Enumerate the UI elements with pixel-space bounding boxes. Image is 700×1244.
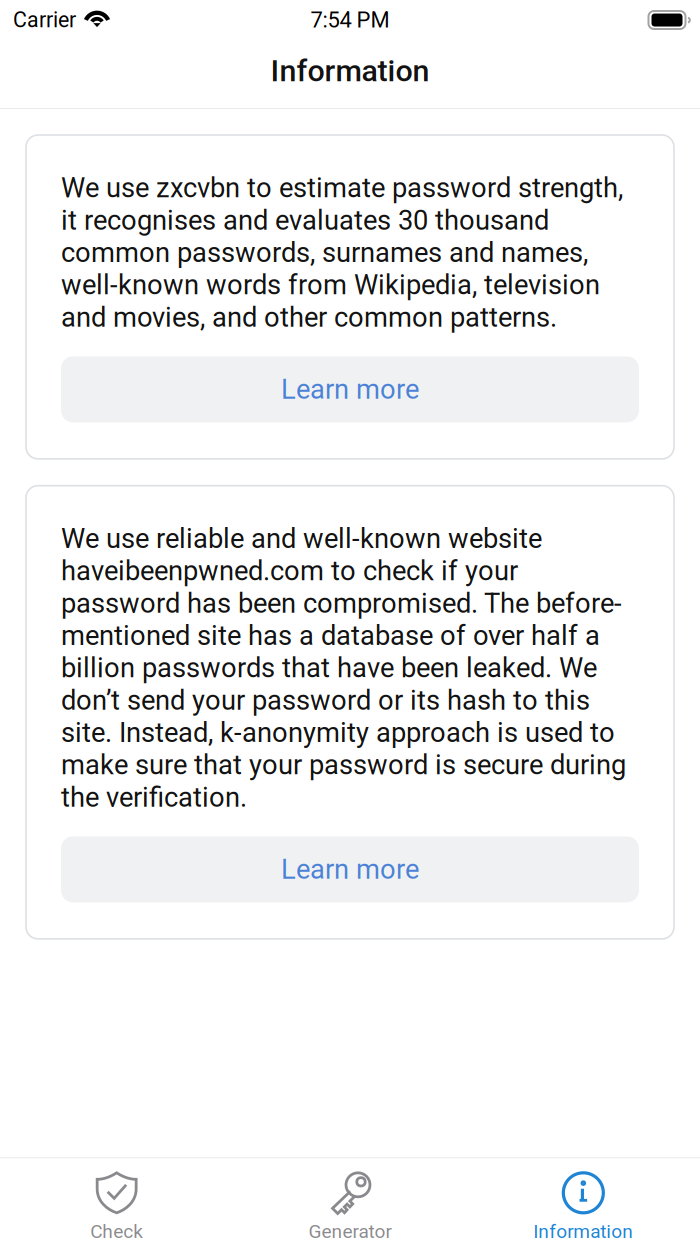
staticText: Carrier [13, 7, 76, 32]
staticText: Information [533, 1220, 633, 1243]
button[interactable]: Learn more [61, 356, 639, 422]
button[interactable]: Information [467, 1158, 700, 1244]
staticText: Learn more [281, 373, 419, 405]
button[interactable]: Learn more [61, 836, 639, 902]
staticText: Information [270, 53, 429, 89]
staticText: Generator [308, 1220, 391, 1243]
staticText: Learn more [281, 853, 419, 885]
staticText: We use zxcvbn to estimate password stren… [61, 172, 623, 333]
button[interactable]: Generator [233, 1158, 467, 1244]
staticText: We use reliable and well-known website h… [61, 523, 626, 813]
button[interactable]: Check [0, 1158, 233, 1244]
staticText: 7:54 PM [310, 7, 389, 33]
staticText: Check [90, 1220, 143, 1243]
